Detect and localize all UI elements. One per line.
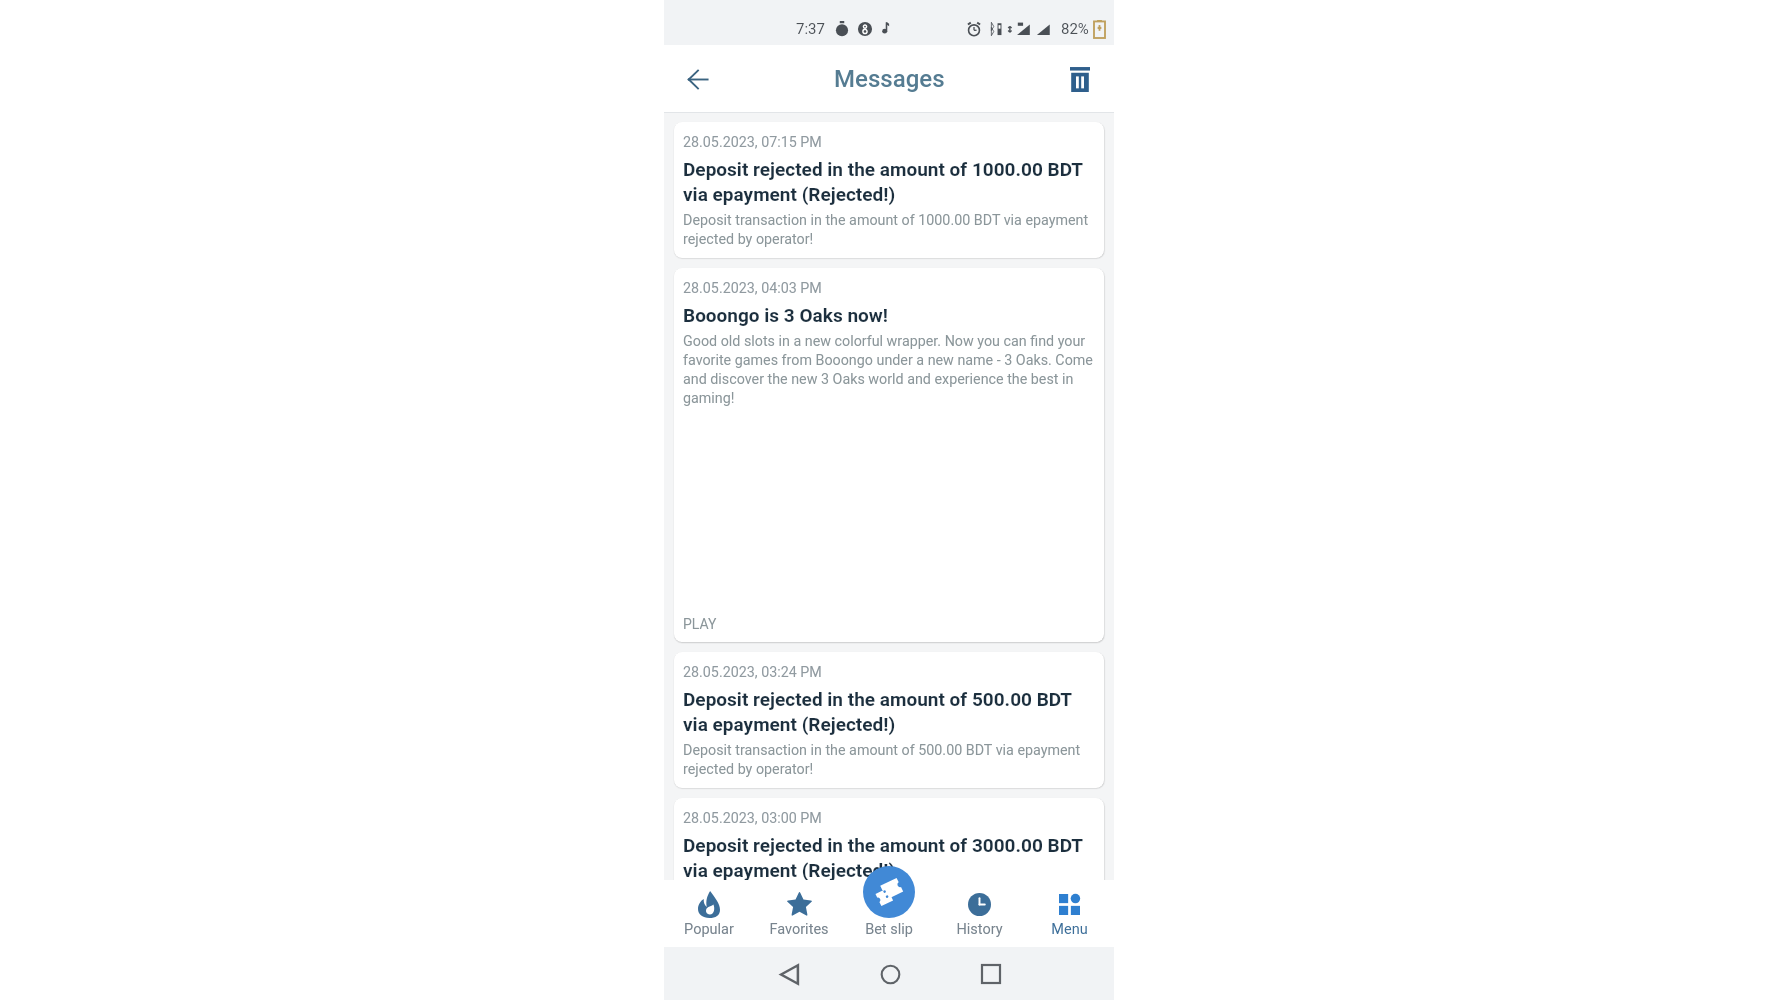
staticText: 7:37 xyxy=(796,20,825,38)
button[interactable]: Popular xyxy=(664,880,754,947)
button[interactable]: Home xyxy=(873,957,907,991)
staticText: Booongo is 3 Oaks now! xyxy=(683,304,888,326)
button[interactable]: Back xyxy=(772,957,806,991)
button[interactable]: History xyxy=(934,880,1024,947)
staticText: Favorites xyxy=(769,921,829,938)
button[interactable]: Bet slip xyxy=(844,880,934,947)
staticText: History xyxy=(956,921,1003,938)
staticText: Popular xyxy=(684,921,734,938)
staticText: Menu xyxy=(1051,921,1088,938)
button[interactable]: Menu xyxy=(1024,880,1114,947)
button[interactable]: PLAY xyxy=(683,616,717,632)
staticText: Deposit transaction in the amount of 300… xyxy=(683,888,1095,924)
staticText: Deposit rejected in the amount of 3000.0… xyxy=(683,834,1095,881)
button[interactable]: Favorites xyxy=(754,880,844,947)
button[interactable]: 28.05.2023, 03:24 PM xyxy=(674,652,1104,788)
button[interactable]: 28.05.2023, 04:03 PM xyxy=(674,268,1104,642)
staticText: Deposit transaction in the amount of 100… xyxy=(683,212,1095,248)
staticText: Deposit rejected in the amount of 1000.0… xyxy=(683,158,1095,205)
staticText: 82% xyxy=(1061,20,1089,38)
staticText: Good old slots in a new colorful wrapper… xyxy=(683,333,1095,407)
staticText: 28.05.2023, 04:03 PM xyxy=(683,280,822,297)
button[interactable]: 28.05.2023, 07:15 PM xyxy=(674,122,1104,258)
button[interactable]: 28.05.2023, 03:00 PM xyxy=(674,798,1104,934)
staticText: 28.05.2023, 03:24 PM xyxy=(683,664,822,681)
staticText: Deposit rejected in the amount of 500.00… xyxy=(683,688,1095,735)
button[interactable]: Recent apps xyxy=(974,957,1008,991)
staticText: Bet slip xyxy=(865,921,913,938)
staticText: 28.05.2023, 03:00 PM xyxy=(683,810,822,827)
button[interactable]: Back xyxy=(676,57,720,101)
button[interactable]: Delete messages xyxy=(1058,57,1102,101)
button[interactable]: Bet slip xyxy=(863,866,915,918)
staticText: Deposit transaction in the amount of 500… xyxy=(683,742,1095,778)
staticText: 28.05.2023, 07:15 PM xyxy=(683,134,822,151)
staticText: Messages xyxy=(834,65,945,93)
